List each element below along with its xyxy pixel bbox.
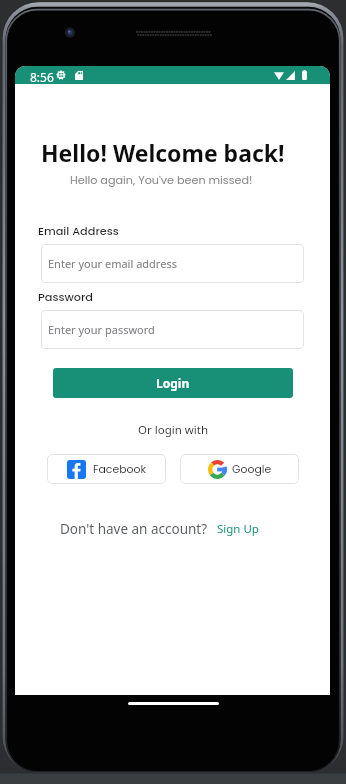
- staticText: Hello again, You've been missed!: [70, 172, 253, 188]
- staticText: Enter your password: [48, 322, 155, 337]
- button[interactable]: Enter your email address: [41, 244, 304, 283]
- staticText: Or login with: [138, 422, 209, 438]
- staticText: Sign Up: [217, 521, 259, 537]
- staticText: Email Address: [38, 223, 119, 239]
- staticText: Enter your email address: [48, 256, 177, 271]
- staticText: 8:56: [30, 69, 54, 85]
- button[interactable]: Facebook: [47, 454, 166, 484]
- staticText: Don't have an account?: [60, 520, 208, 538]
- staticText: Hello! Welcome back!: [41, 137, 285, 168]
- staticText: Google: [232, 462, 272, 477]
- button[interactable]: Google: [180, 454, 299, 484]
- staticText: Login: [156, 375, 190, 391]
- staticText: Password: [38, 289, 93, 305]
- button[interactable]: Login: [53, 368, 293, 398]
- button[interactable]: Enter your password: [41, 310, 304, 349]
- staticText: Facebook: [93, 462, 147, 477]
- button[interactable]: Don't have an account?: [60, 520, 259, 538]
